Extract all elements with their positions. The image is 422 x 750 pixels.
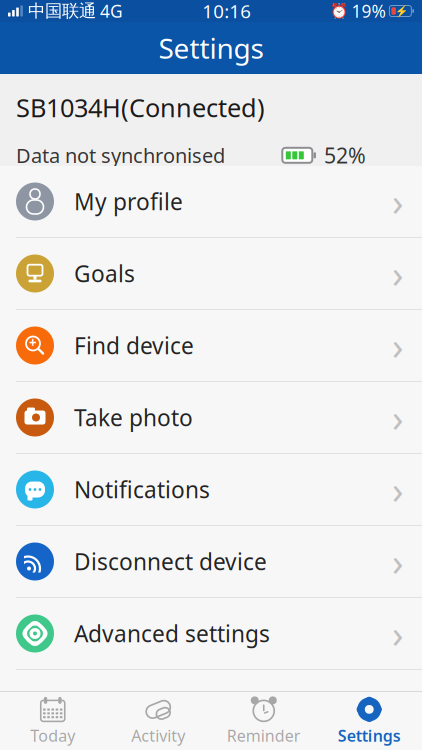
- staticText: Data not synchronised: [16, 142, 225, 169]
- staticText: ›: [392, 177, 404, 226]
- button[interactable]: Notifications: [0, 454, 422, 525]
- staticText: ›: [392, 393, 404, 442]
- staticText: Goals: [74, 258, 135, 288]
- staticText: Activity: [131, 725, 185, 746]
- button[interactable]: Goals: [0, 238, 422, 309]
- staticText: ⏰: [330, 3, 348, 19]
- staticText: 19%: [351, 0, 385, 22]
- staticText: ›: [392, 609, 404, 658]
- staticText: ›: [392, 465, 404, 514]
- button[interactable]: Today: [0, 692, 105, 750]
- staticText: Reminder: [227, 725, 301, 746]
- button[interactable]: My profile: [0, 166, 422, 237]
- staticText: ⚡: [395, 5, 408, 17]
- staticText: ›: [392, 321, 404, 370]
- button[interactable]: Activity: [105, 692, 211, 750]
- button[interactable]: Disconnect device: [0, 526, 422, 597]
- button[interactable]: +: [0, 310, 422, 381]
- staticText: +: [29, 334, 37, 351]
- staticText: Find device: [74, 330, 194, 360]
- staticText: ›: [392, 249, 404, 298]
- button[interactable]: Settings: [316, 692, 422, 750]
- staticText: Advanced settings: [74, 618, 270, 648]
- button[interactable]: Advanced settings: [0, 598, 422, 669]
- staticText: Take photo: [74, 402, 193, 432]
- staticText: Today: [30, 725, 75, 746]
- button[interactable]: Take photo: [0, 382, 422, 453]
- staticText: 10:16: [202, 0, 251, 23]
- staticText: Settings: [338, 725, 401, 746]
- staticText: SB1034H(Connected): [16, 90, 265, 124]
- staticText: 52%: [324, 141, 366, 169]
- staticText: My profile: [74, 186, 183, 216]
- staticText: Notifications: [74, 474, 210, 504]
- staticText: Settings: [158, 29, 263, 67]
- staticText: 中国联通: [28, 0, 96, 22]
- button[interactable]: Reminder: [211, 692, 316, 750]
- staticText: Disconnect device: [74, 546, 267, 576]
- staticText: 4G: [100, 0, 123, 22]
- staticText: ›: [392, 537, 404, 586]
